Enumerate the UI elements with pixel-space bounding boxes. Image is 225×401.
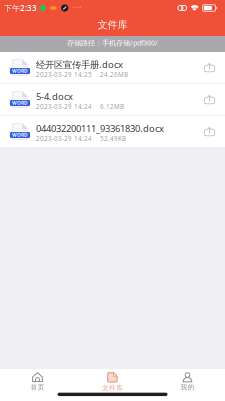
staticText: 5-4.docx bbox=[36, 90, 73, 103]
staticText: 24.26MB bbox=[100, 70, 128, 79]
staticText: • • • bbox=[73, 5, 81, 11]
staticText: 我的 bbox=[180, 383, 194, 392]
button[interactable]: WORD bbox=[0, 116, 225, 148]
staticText: 2023-03-29 14:25 bbox=[36, 70, 92, 79]
staticText: 6.12MB bbox=[100, 102, 124, 111]
staticText: 文件库 bbox=[102, 384, 123, 392]
staticText: 存储路径：手机存储/pdf360/ bbox=[67, 38, 158, 48]
staticText: WORD bbox=[12, 68, 28, 74]
button[interactable]: WORD bbox=[0, 52, 225, 84]
button[interactable]: 首页 bbox=[0, 368, 75, 393]
staticText: WORD bbox=[12, 132, 28, 138]
button[interactable]: WORD bbox=[0, 84, 225, 116]
staticText: 下午2:33 bbox=[4, 3, 37, 13]
staticText: 2023-03-29 14:24 bbox=[36, 102, 92, 111]
button[interactable]: 文件库 bbox=[75, 368, 150, 393]
staticText: 文件库 bbox=[97, 19, 127, 31]
staticText: 首页 bbox=[30, 383, 44, 392]
button[interactable]: 我的 bbox=[150, 368, 225, 393]
staticText: WORD bbox=[12, 100, 28, 106]
staticText: 2023-03-29 14:24 bbox=[36, 134, 92, 143]
staticText: 044032200111_93361830.docx bbox=[36, 122, 164, 135]
staticText: 经开区宣传手册.docx bbox=[36, 58, 123, 71]
staticText: 52.49KB bbox=[100, 134, 126, 143]
